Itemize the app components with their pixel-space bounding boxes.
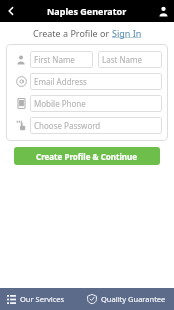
button[interactable]: Quality Guarantee xyxy=(87,288,174,310)
staticText: Mobile Phone xyxy=(34,98,86,109)
staticText: Choose Password xyxy=(34,120,101,131)
button[interactable]: Create Profile & Continue xyxy=(14,147,160,165)
button[interactable]: Last Name xyxy=(98,51,162,68)
button[interactable]: Back xyxy=(0,0,22,22)
staticText: Create a Profile or xyxy=(33,27,112,39)
staticText: Sign In xyxy=(112,27,142,39)
staticText: Email Address xyxy=(34,76,87,87)
staticText: Our Services xyxy=(20,294,65,304)
staticText: Create Profile & Continue xyxy=(36,151,138,162)
button[interactable]: First Name xyxy=(30,51,93,68)
button[interactable]: Mobile Phone xyxy=(30,95,162,112)
button[interactable]: Account xyxy=(152,0,174,22)
staticText: Last Name xyxy=(102,54,143,65)
staticText: Quality Guarantee xyxy=(101,294,166,304)
staticText: Naples Generator xyxy=(47,5,127,17)
button[interactable]: Our Services xyxy=(0,288,87,310)
button[interactable]: Choose Password xyxy=(30,117,162,134)
staticText: First Name xyxy=(34,54,75,65)
button[interactable]: Sign In xyxy=(112,27,142,39)
button[interactable]: Email Address xyxy=(30,73,162,90)
